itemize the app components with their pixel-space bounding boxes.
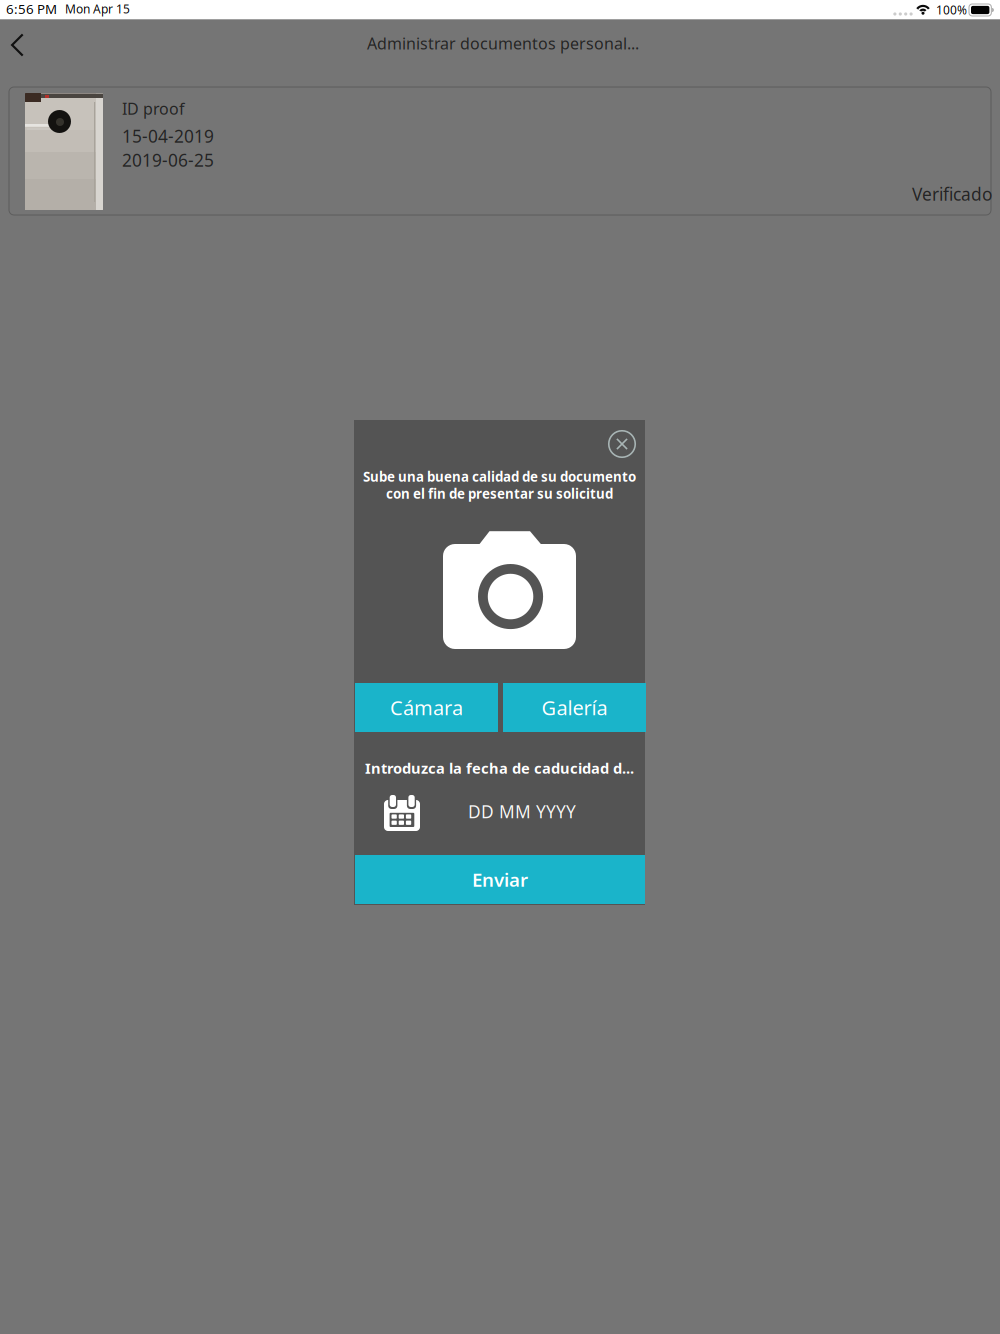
staticText: 15-04-2019 <box>122 124 214 147</box>
staticText: Galería <box>541 694 607 721</box>
button[interactable]: Galería <box>503 683 646 732</box>
staticText: Introduzca la fecha de caducidad d... <box>365 758 634 778</box>
staticText: ID proof <box>122 98 185 119</box>
button[interactable]: Enviar <box>355 855 645 904</box>
button[interactable]: DD MM YYYY <box>354 788 645 836</box>
staticText: Sube una buena calidad de su documento <box>363 468 636 485</box>
staticText: Cámara <box>390 694 463 721</box>
staticText: Enviar <box>472 867 528 892</box>
button[interactable]: Close <box>600 422 644 466</box>
button[interactable]: Cámara <box>355 683 498 732</box>
staticText: 100% <box>936 2 967 18</box>
button[interactable]: Back <box>0 19 44 69</box>
staticText: con el fin de presentar su solicitud <box>386 485 613 502</box>
staticText: DD MM YYYY <box>468 800 576 823</box>
staticText: 6:56 PM <box>6 0 57 18</box>
staticText: 2019-06-25 <box>122 148 214 171</box>
staticText: Verificado <box>912 182 992 205</box>
button[interactable]: ID proof <box>9 87 991 215</box>
staticText: Administrar documentos personal... <box>367 33 639 54</box>
staticText: Mon Apr 15 <box>65 1 130 17</box>
